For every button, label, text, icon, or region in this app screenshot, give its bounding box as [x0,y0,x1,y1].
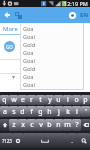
button[interactable]: s [9,106,18,117]
button[interactable]: Language EN [78,7,90,23]
button[interactable]: Backspace [81,119,90,131]
staticText: . [71,137,73,145]
button[interactable]: t [36,95,45,105]
staticText: z [12,120,16,130]
button[interactable]: m [63,119,72,131]
staticText: Goa [23,25,34,32]
button[interactable]: r [27,95,36,105]
staticText: e [21,95,25,105]
staticText: m [64,120,71,130]
staticText: Goal [23,57,35,64]
staticText: t [39,95,42,105]
button[interactable]: Gold [20,40,84,48]
button[interactable]: a [0,106,9,117]
staticText: x [21,120,25,130]
button[interactable]: Goa [20,24,84,32]
staticText: r [30,95,33,105]
button[interactable]: More [0,23,20,34]
button[interactable]: Shift [0,119,9,131]
button[interactable]: Search [77,133,90,148]
staticText: y [48,95,52,105]
button[interactable]: q [0,95,9,105]
staticText: s [12,107,16,117]
button[interactable]: u [54,95,63,105]
staticText: f [30,107,33,117]
button[interactable]: Goal [20,32,84,40]
button[interactable]: h [45,106,54,117]
button[interactable]: i [63,95,72,105]
staticText: k [66,107,70,117]
button[interactable]: Switch keyboard [13,7,24,23]
staticText: GO [6,44,13,50]
staticText: ? [75,120,79,130]
button[interactable]: y [45,95,54,105]
staticText: Goa [23,49,34,56]
button[interactable]: j [54,106,63,117]
button[interactable]: k [63,106,72,117]
staticText: n [56,120,61,130]
staticText: ' [85,107,87,117]
button[interactable]: o [72,95,81,105]
button[interactable]: Goa [20,72,84,80]
button[interactable]: Navigate up [0,7,13,23]
staticText: g [38,107,43,117]
staticText: 12:19 PM [64,0,88,7]
button[interactable]: z [9,119,18,131]
button[interactable]: Space [23,133,67,148]
staticText: EN [80,11,89,19]
button[interactable]: x [18,119,27,131]
button[interactable]: b [45,119,54,131]
button[interactable]: Search [4,41,15,52]
button[interactable]: Goal [20,80,84,88]
button[interactable]: w [9,95,18,105]
button[interactable]: Gold [20,64,84,72]
staticText: w [11,95,17,105]
staticText: Gold [23,65,36,72]
staticText: h [47,107,52,117]
staticText: Gold [23,41,36,48]
staticText: Goal [23,81,35,88]
button[interactable]: Settings [13,133,23,148]
button[interactable]: p [81,95,90,105]
button[interactable]: l [72,106,81,117]
staticText: Goa [23,73,34,80]
staticText: More [3,25,18,33]
staticText: d [20,107,25,117]
staticText: b [47,120,52,130]
button[interactable]: ?123 [0,133,13,148]
staticText: l [76,107,78,117]
button[interactable]: v [36,119,45,131]
staticText: p [83,95,88,105]
staticText: q [2,95,7,105]
staticText: u [56,95,61,105]
button[interactable]: . [67,133,77,148]
staticText: v [39,120,43,130]
button[interactable]: ? [72,119,81,131]
button[interactable]: Goa [20,48,84,56]
staticText: Goal [23,33,35,40]
staticText: c [30,120,34,130]
button[interactable]: d [18,106,27,117]
button[interactable]: n [54,119,63,131]
button[interactable]: f [27,106,36,117]
staticText: j [58,107,60,117]
staticText: i [67,95,69,105]
button[interactable]: ' [81,106,90,117]
staticText: o [74,95,79,105]
staticText: a [3,107,7,117]
button[interactable]: e [18,95,27,105]
button[interactable]: Voice input [66,7,78,23]
button[interactable]: g [36,106,45,117]
button[interactable]: Goal [20,56,84,64]
button[interactable]: c [27,119,36,131]
staticText: ?123 [2,138,12,144]
